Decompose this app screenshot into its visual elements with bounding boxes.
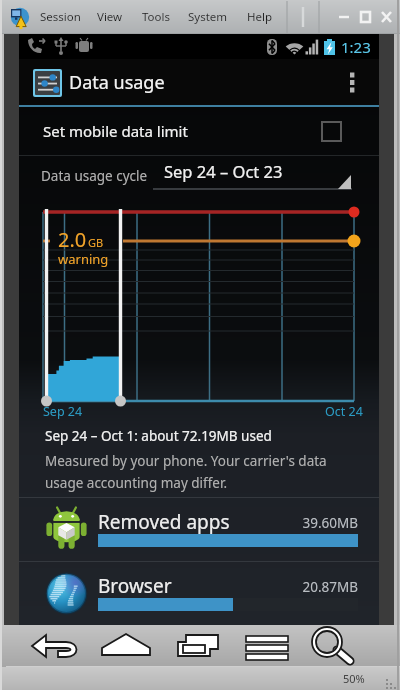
staticText: Sep 24 – Oct 1: about 72.19MB used	[45, 427, 272, 445]
button[interactable]: Set mobile data limit	[19, 107, 379, 155]
button[interactable]: Menu	[238, 629, 298, 663]
button[interactable]: Removed apps	[19, 498, 379, 562]
staticText: Browser	[98, 573, 172, 599]
staticText: 2.0	[58, 226, 87, 253]
button[interactable]: System	[188, 9, 228, 25]
staticText: 20.87MB	[278, 578, 358, 596]
button[interactable]: View	[97, 9, 123, 25]
staticText: 50%	[343, 671, 365, 686]
staticText: Data usage	[69, 70, 165, 95]
staticText: Sep 24	[43, 403, 83, 420]
button[interactable]: Help	[247, 9, 273, 25]
staticText: Set mobile data limit	[43, 121, 188, 141]
staticText: Oct 24	[325, 403, 363, 420]
staticText: Removed apps	[98, 509, 230, 535]
button[interactable]: Back	[28, 629, 88, 663]
staticText: 39.60MB	[278, 514, 358, 532]
button[interactable]: Sep 24 – Oct 23	[153, 156, 352, 194]
staticText: Data usage cycle	[41, 167, 148, 185]
button[interactable]: More options	[337, 59, 379, 107]
staticText: 1:23	[341, 37, 371, 57]
button[interactable]: Home	[98, 629, 162, 663]
staticText: Sep 24 – Oct 23	[164, 160, 283, 182]
staticText: GB	[88, 235, 104, 250]
button[interactable]: Session	[40, 9, 81, 25]
staticText: Measured by your phone. Your carrier's d…	[45, 452, 327, 492]
button[interactable]: Browser	[19, 562, 379, 626]
button[interactable]: Search	[306, 629, 366, 663]
button[interactable]: Tools	[142, 9, 170, 25]
button[interactable]: Recent apps	[170, 629, 230, 663]
staticText: warning	[58, 250, 109, 268]
